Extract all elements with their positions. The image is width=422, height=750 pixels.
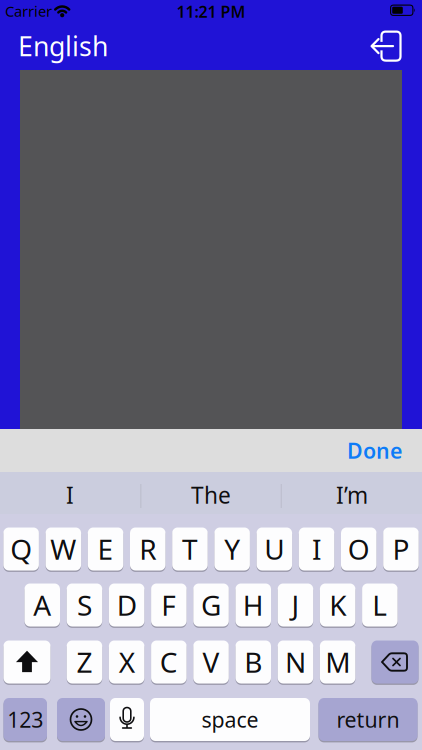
button[interactable]: M xyxy=(320,640,355,683)
button[interactable]: I xyxy=(299,527,334,570)
staticText: H xyxy=(243,586,264,624)
staticText: The xyxy=(191,480,231,510)
button[interactable]: Z xyxy=(67,640,102,683)
staticText: Y xyxy=(224,530,240,568)
staticText: P xyxy=(392,530,409,568)
button[interactable]: S xyxy=(67,583,102,626)
button[interactable]: B xyxy=(235,640,271,683)
button[interactable]: Exit xyxy=(359,29,405,63)
button[interactable]: Delete xyxy=(371,640,418,683)
button[interactable]: O xyxy=(341,527,376,570)
staticText: I xyxy=(66,480,74,510)
button[interactable]: V xyxy=(193,640,229,683)
staticText: 11:21 PM xyxy=(176,1,245,22)
staticText: 123 xyxy=(7,705,43,734)
button[interactable]: D xyxy=(109,583,144,626)
staticText: J xyxy=(291,586,299,624)
staticText: L xyxy=(372,586,387,624)
staticText: Z xyxy=(76,643,92,681)
staticText: T xyxy=(182,530,198,568)
staticText: M xyxy=(325,643,350,681)
staticText: W xyxy=(50,530,76,568)
button[interactable]: A xyxy=(24,583,60,626)
staticText: N xyxy=(285,643,306,681)
button[interactable]: N xyxy=(278,640,313,683)
staticText: F xyxy=(161,586,176,624)
button[interactable]: J xyxy=(278,583,313,626)
button[interactable]: H xyxy=(235,583,271,626)
button[interactable]: Shift xyxy=(3,640,50,683)
staticText: B xyxy=(244,643,262,681)
button[interactable]: Y xyxy=(214,527,250,570)
staticText: V xyxy=(203,643,220,681)
staticText: I’m xyxy=(336,480,368,510)
button[interactable]: space xyxy=(150,698,310,741)
button[interactable]: E xyxy=(88,527,123,570)
staticText: I xyxy=(312,530,321,568)
button[interactable]: Q xyxy=(3,527,39,570)
staticText: English xyxy=(18,28,108,64)
button[interactable]: F xyxy=(151,583,187,626)
staticText: Carrier xyxy=(5,1,52,21)
staticText: Q xyxy=(10,530,32,568)
staticText: A xyxy=(33,586,51,624)
button[interactable]: return xyxy=(318,698,417,741)
button[interactable]: Dictate xyxy=(110,698,144,741)
staticText: X xyxy=(119,643,135,681)
button[interactable]: P xyxy=(383,527,419,570)
button[interactable]: W xyxy=(46,527,81,570)
button[interactable]: G xyxy=(193,583,229,626)
button[interactable]: U xyxy=(257,527,292,570)
staticText: K xyxy=(329,586,346,624)
staticText: D xyxy=(117,586,137,624)
button[interactable]: R xyxy=(130,527,165,570)
button[interactable]: 123 xyxy=(3,698,47,741)
staticText: E xyxy=(98,530,114,568)
button[interactable]: I xyxy=(5,474,135,516)
button[interactable]: Done xyxy=(341,429,408,472)
staticText: space xyxy=(201,705,258,734)
button[interactable]: L xyxy=(362,583,398,626)
button[interactable]: X xyxy=(109,640,144,683)
staticText: S xyxy=(77,586,92,624)
staticText: Done xyxy=(347,436,402,465)
staticText: R xyxy=(139,530,156,568)
button[interactable]: C xyxy=(151,640,187,683)
button[interactable]: I’m xyxy=(287,474,417,516)
staticText: O xyxy=(348,530,370,568)
button[interactable]: The xyxy=(146,474,276,516)
staticText: G xyxy=(201,586,221,624)
staticText: return xyxy=(336,705,399,734)
staticText: U xyxy=(264,530,284,568)
staticText: C xyxy=(160,643,178,681)
button[interactable]: K xyxy=(320,583,355,626)
button[interactable]: T xyxy=(172,527,208,570)
button[interactable]: Emoji xyxy=(57,698,105,741)
